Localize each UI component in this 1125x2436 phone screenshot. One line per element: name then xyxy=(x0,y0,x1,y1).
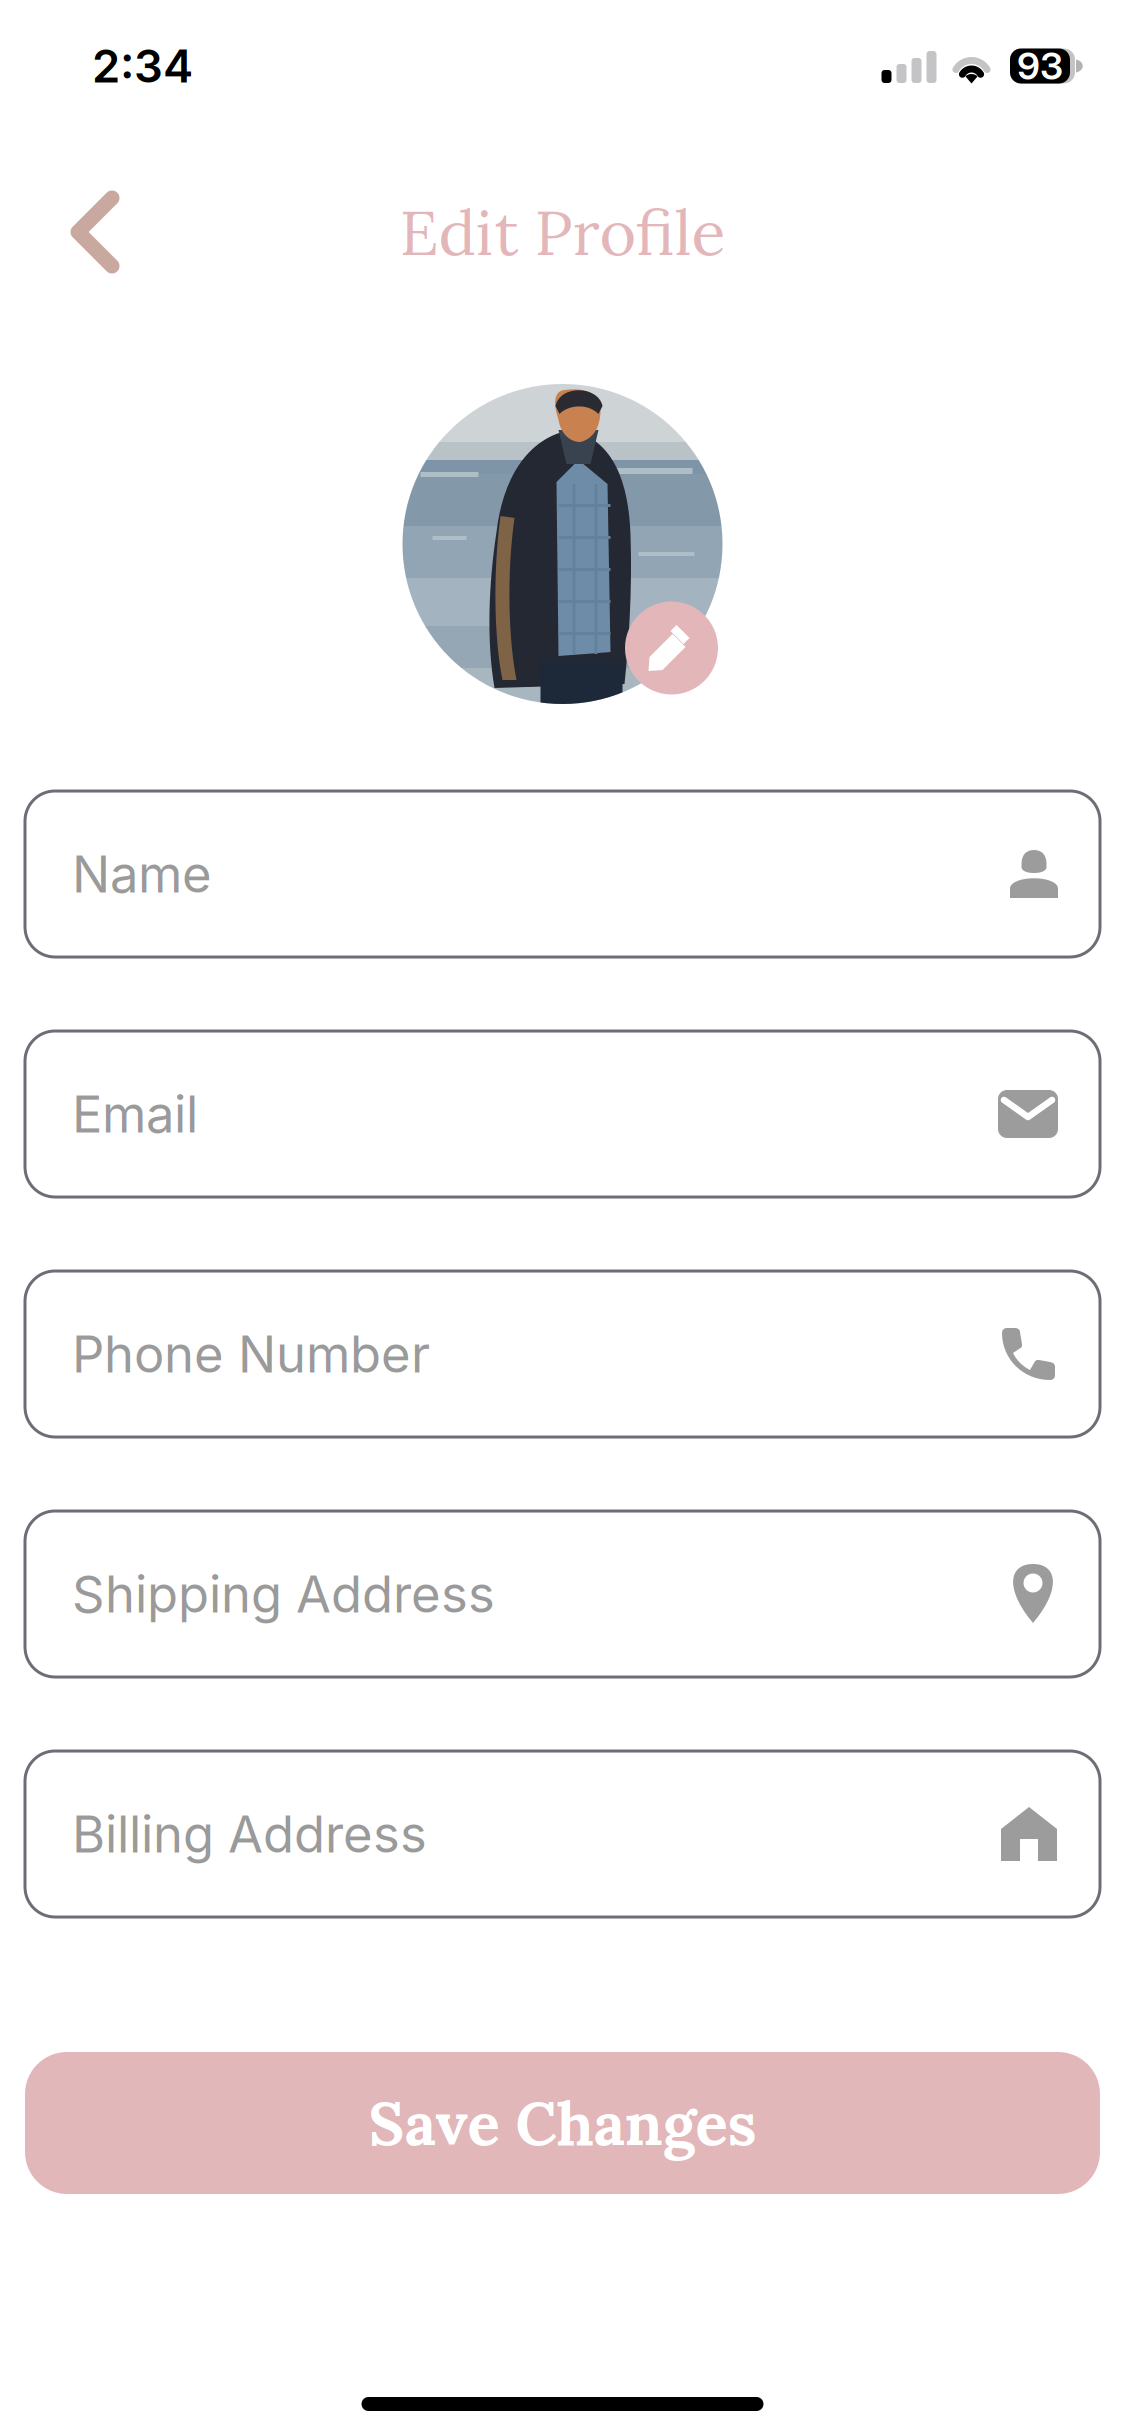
staticText: Name xyxy=(72,843,212,905)
staticText: 93 xyxy=(1017,43,1063,89)
button[interactable]: Shipping Address xyxy=(25,1511,1100,1677)
button[interactable]: Change profile photo xyxy=(625,601,718,694)
button[interactable]: Name xyxy=(25,791,1100,957)
staticText: Billing Address xyxy=(72,1803,427,1865)
button[interactable]: Back xyxy=(0,132,148,332)
staticText: Save Changes xyxy=(368,2085,756,2161)
staticText: Shipping Address xyxy=(72,1563,495,1625)
button[interactable]: Billing Address xyxy=(25,1751,1100,1917)
staticText: 2:34 xyxy=(92,39,193,93)
staticText: Phone Number xyxy=(72,1323,430,1385)
staticText: Edit Profile xyxy=(399,192,725,272)
button[interactable]: Email xyxy=(25,1031,1100,1197)
staticText: Email xyxy=(72,1083,198,1145)
button[interactable]: Phone Number xyxy=(25,1271,1100,1437)
button[interactable]: Save Changes xyxy=(25,2052,1100,2194)
